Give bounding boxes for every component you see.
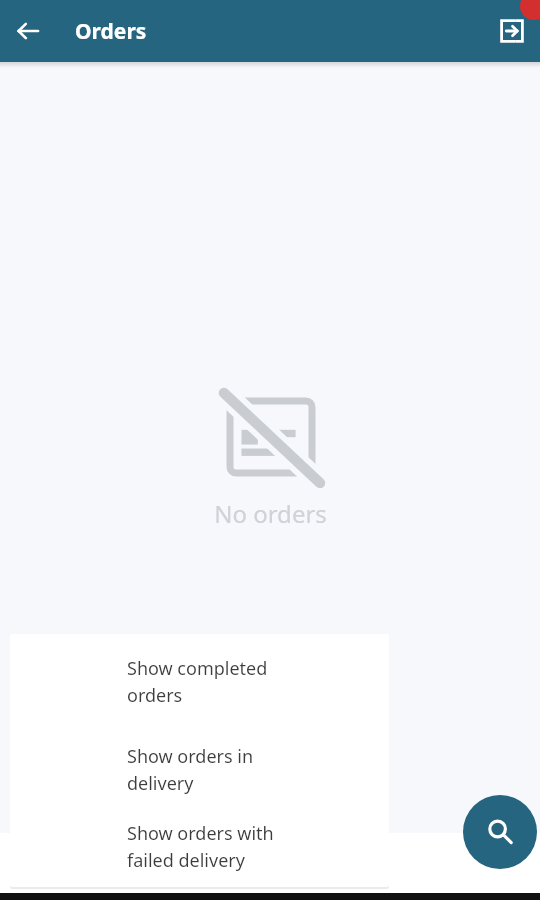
staticText: Orders bbox=[75, 17, 147, 46]
button[interactable]: Show orders with failed delivery bbox=[10, 799, 389, 876]
staticText: No orders bbox=[214, 497, 327, 530]
button[interactable]: Show orders in delivery bbox=[10, 722, 389, 799]
staticText: Show orders in delivery bbox=[127, 744, 254, 795]
button[interactable]: Show completed orders bbox=[10, 634, 389, 722]
button[interactable]: Log out bbox=[484, 3, 540, 59]
button[interactable]: Back bbox=[0, 3, 56, 59]
staticText: Show completed orders bbox=[127, 656, 268, 707]
button[interactable]: Search bbox=[463, 795, 537, 869]
staticText: Show orders with failed delivery bbox=[127, 821, 274, 872]
